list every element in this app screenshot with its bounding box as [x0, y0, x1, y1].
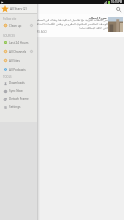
staticText: 10:15 PM — [111, 0, 123, 4]
button[interactable]: Settings — [0, 103, 37, 111]
staticText: نص للمقالة العربية مع تفاصيل اضافية هنا … — [2, 18, 108, 30]
staticText: TOOLS — [3, 75, 12, 79]
staticText: صورة لمعالم — [0, 16, 107, 20]
button[interactable]: Detach Frame — [0, 95, 37, 103]
button[interactable]: Search — [115, 6, 122, 13]
button[interactable]: All Sites — [0, 56, 37, 65]
staticText: Sync Now — [9, 89, 33, 93]
button[interactable]: Downloads — [0, 79, 37, 87]
staticText: SOURCE NAME - 3 HOURS AGO — [5, 30, 47, 34]
staticText: All Stars (2) — [10, 7, 27, 11]
staticText: Clean up — [9, 24, 30, 28]
staticText: Follow site — [3, 17, 17, 21]
button[interactable]: Clean up — [0, 21, 37, 30]
staticText: All Podcasts — [9, 68, 33, 72]
button[interactable]: صورة لمعالم — [0, 14, 124, 37]
staticText: Downloads — [9, 81, 33, 85]
staticText: Detach Frame — [9, 97, 33, 101]
button[interactable]: All Channels — [0, 47, 37, 56]
staticText: All Channels — [9, 50, 30, 54]
button[interactable]: All Stars (2) — [0, 4, 37, 13]
button[interactable]: Last 24 Hours — [0, 38, 37, 47]
staticText: Last 24 Hours — [9, 41, 33, 45]
staticText: Settings — [9, 105, 33, 109]
button[interactable]: All Podcasts — [0, 65, 37, 74]
staticText: All Sites — [9, 59, 33, 63]
staticText: SOURCES — [3, 34, 15, 38]
button[interactable]: Sync Now — [0, 87, 37, 95]
